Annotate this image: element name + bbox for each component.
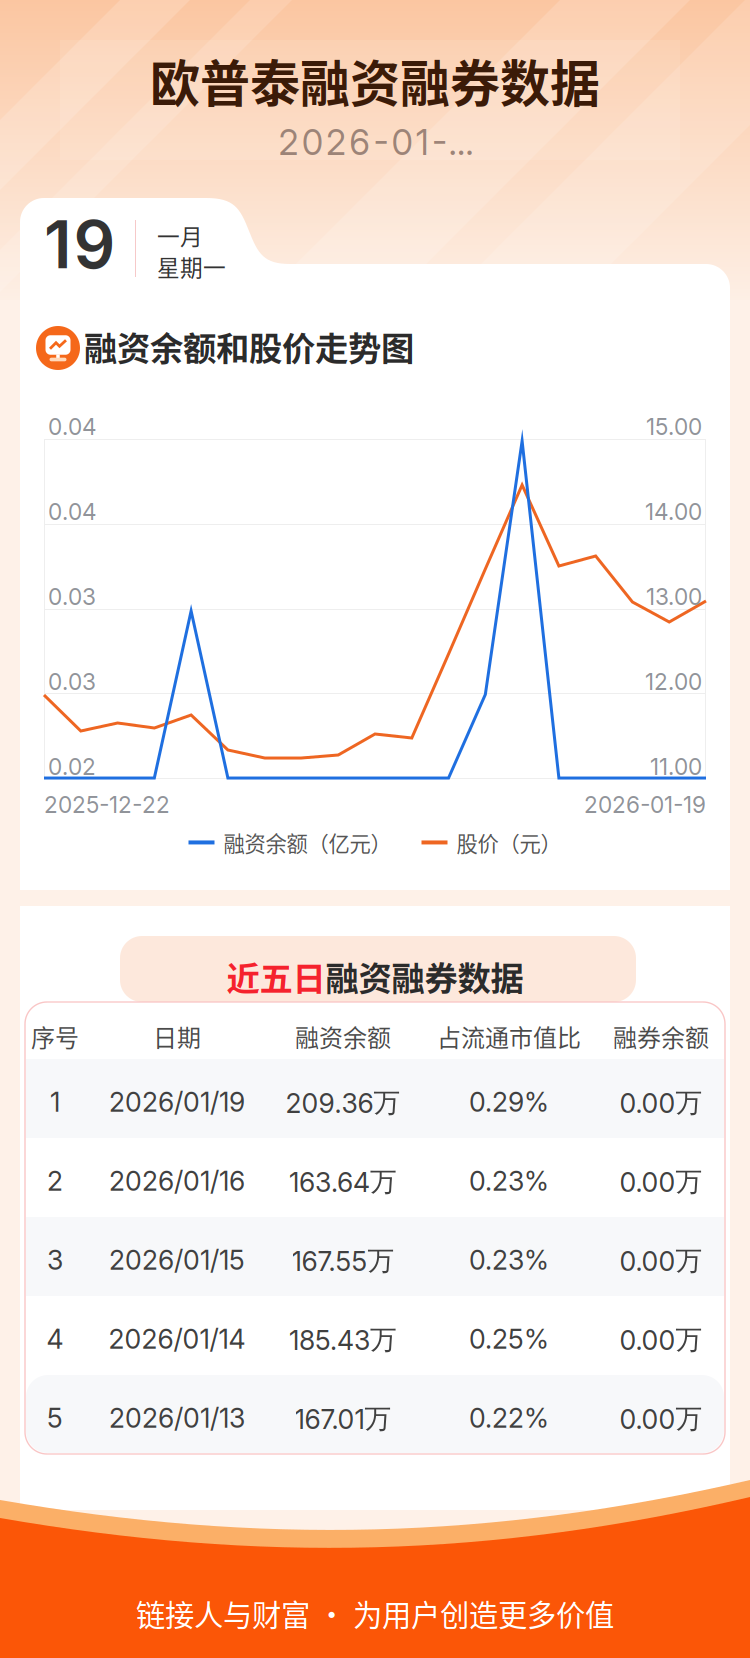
staticText: 0.03 xyxy=(48,583,96,610)
staticText: 11.00 xyxy=(650,753,702,780)
staticText: 股价（元） xyxy=(456,827,561,858)
staticText: 0.00万 xyxy=(619,1402,702,1436)
staticText: 19 xyxy=(44,205,115,284)
staticText: 5 xyxy=(47,1402,63,1434)
staticText: 融资余额（亿元） xyxy=(223,827,391,858)
staticText: 一月 xyxy=(157,219,203,252)
staticText: 链接人与财富 · 为用户创造更多价值 xyxy=(136,1592,614,1634)
staticText: 融券余额 xyxy=(613,1019,709,1054)
staticText: 0.04 xyxy=(48,413,97,440)
staticText: 序号 xyxy=(31,1019,79,1054)
staticText: 0.23% xyxy=(469,1165,549,1197)
staticText: 4 xyxy=(46,1323,63,1355)
staticText: 2025-12-22 xyxy=(44,791,170,818)
staticText: 2026-01-19 xyxy=(584,791,706,818)
staticText: 167.55万 xyxy=(291,1244,394,1278)
staticText: 占流通市值比 xyxy=(437,1019,581,1054)
staticText: 0.25% xyxy=(469,1323,549,1355)
staticText: 15.00 xyxy=(646,413,702,440)
staticText: 1 xyxy=(50,1086,60,1118)
staticText: 13.00 xyxy=(646,583,702,610)
staticText: 欧普泰融资融券数据 xyxy=(150,44,600,116)
staticText: 2026-01-19 xyxy=(279,121,487,163)
staticText: 167.01万 xyxy=(294,1402,391,1436)
staticText: 0.22% xyxy=(469,1402,549,1434)
staticText: 星期一 xyxy=(157,250,226,283)
staticText: 0.03 xyxy=(48,668,96,695)
staticText: 0.00万 xyxy=(619,1165,702,1199)
staticText: 0.00万 xyxy=(619,1244,702,1278)
staticText: 0.29% xyxy=(469,1086,549,1118)
staticText: 2026/01/19 xyxy=(109,1086,245,1118)
staticText: 163.64万 xyxy=(289,1165,397,1199)
staticText: 209.36万 xyxy=(285,1086,400,1120)
staticText: 0.23% xyxy=(469,1244,549,1276)
staticText: 日期 xyxy=(153,1019,201,1054)
staticText: 14.00 xyxy=(645,498,702,525)
staticText: 0.00万 xyxy=(619,1323,702,1357)
staticText: 185.43万 xyxy=(289,1323,397,1357)
staticText: 2026/01/14 xyxy=(108,1323,245,1355)
staticText: 近五日 xyxy=(226,952,325,1000)
staticText: 0.04 xyxy=(48,498,97,525)
staticText: 融资融券数据 xyxy=(325,952,523,1000)
staticText: 融资余额 xyxy=(295,1019,391,1054)
staticText: 2026/01/16 xyxy=(109,1165,245,1197)
staticText: 12.00 xyxy=(645,668,702,695)
staticText: 3 xyxy=(47,1244,63,1276)
staticText: 0.00万 xyxy=(619,1086,702,1120)
staticText: 0.02 xyxy=(48,753,96,780)
staticText: 2026/01/13 xyxy=(109,1402,245,1434)
staticText: 融资余额和股价走势图 xyxy=(84,322,414,370)
staticText: 2026/01/15 xyxy=(109,1244,245,1276)
staticText: 2 xyxy=(47,1165,63,1197)
